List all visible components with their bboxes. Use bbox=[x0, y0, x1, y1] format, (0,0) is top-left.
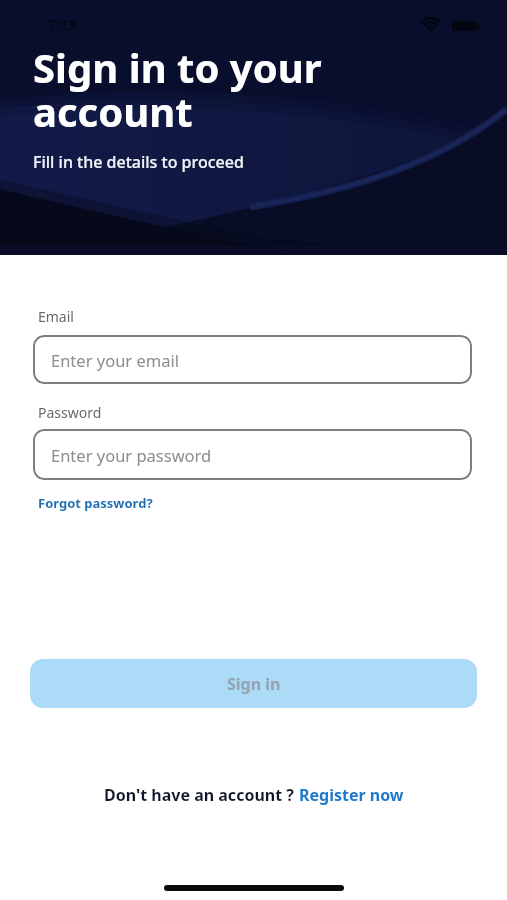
staticText: 7:13 bbox=[48, 15, 76, 34]
button[interactable]: Enter your password bbox=[33, 429, 472, 480]
staticText: Register now bbox=[299, 784, 404, 806]
staticText: Enter your email bbox=[51, 349, 179, 371]
staticText: Password bbox=[38, 403, 102, 422]
staticText: Fill in the details to proceed bbox=[33, 151, 244, 173]
staticText: Sign in to your account bbox=[33, 40, 322, 138]
button[interactable]: Enter your email bbox=[33, 335, 472, 384]
staticText: Enter your password bbox=[51, 444, 212, 466]
staticText: Forgot password? bbox=[38, 494, 153, 512]
staticText: Email bbox=[38, 307, 74, 326]
button[interactable]: Don't have an account ? bbox=[0, 784, 507, 806]
staticText: Don't have an account ? bbox=[104, 784, 299, 806]
button[interactable]: Forgot password? bbox=[38, 494, 153, 512]
staticText: Sign in bbox=[227, 673, 281, 695]
button[interactable]: Sign in bbox=[30, 659, 477, 708]
